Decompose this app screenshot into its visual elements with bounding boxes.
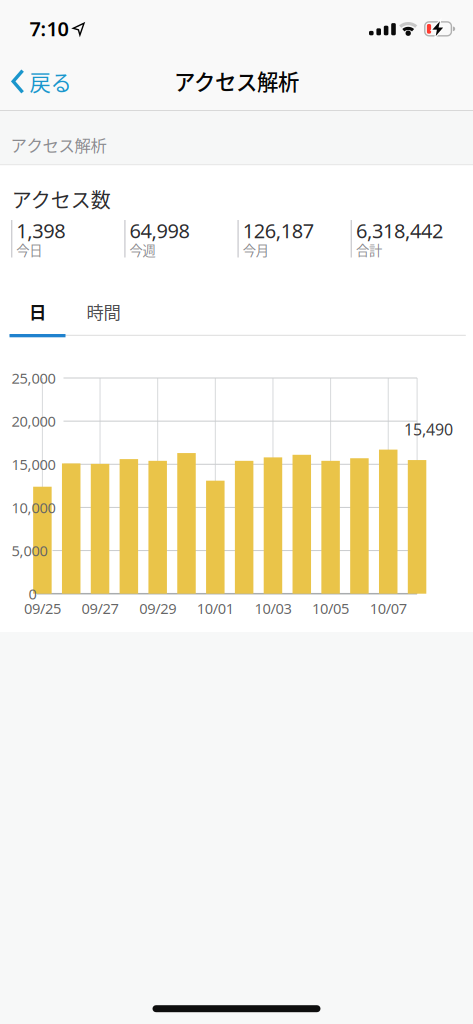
staticText: 15,490 (404, 419, 453, 440)
button[interactable]: 時間 (71, 294, 137, 328)
staticText: 戻る (29, 66, 71, 97)
staticText: 日 (29, 299, 46, 324)
staticText: 126,187 (243, 217, 314, 244)
staticText: 0 (28, 584, 36, 603)
staticText: 6,318,442 (356, 217, 443, 244)
staticText: 15,000 (11, 455, 55, 474)
button[interactable]: 日 (9, 294, 65, 328)
staticText: 10/01 (197, 598, 234, 618)
staticText: 10/03 (254, 598, 291, 618)
staticText: 10,000 (11, 498, 55, 517)
staticText: アクセス解析 (11, 133, 107, 156)
staticText: 20,000 (11, 411, 55, 431)
staticText: 今月 (243, 240, 269, 259)
staticText: 09/29 (139, 598, 176, 618)
staticText: 今週 (129, 240, 155, 259)
staticText: 今日 (16, 240, 42, 259)
staticText: 09/27 (81, 598, 118, 618)
staticText: アクセス数 (12, 184, 111, 213)
staticText: 5,000 (11, 541, 47, 560)
staticText: 時間 (87, 299, 121, 324)
staticText: 10/07 (370, 598, 407, 618)
staticText: 10/05 (312, 598, 349, 618)
staticText: 25,000 (11, 368, 55, 388)
staticText: 7:10 (29, 15, 68, 42)
staticText: アクセス解析 (174, 65, 299, 96)
staticText: 1,398 (16, 217, 65, 244)
staticText: 合計 (356, 240, 382, 259)
staticText: 64,998 (129, 217, 189, 244)
staticText: 09/25 (24, 598, 61, 618)
button[interactable]: 戻る (6, 64, 84, 99)
